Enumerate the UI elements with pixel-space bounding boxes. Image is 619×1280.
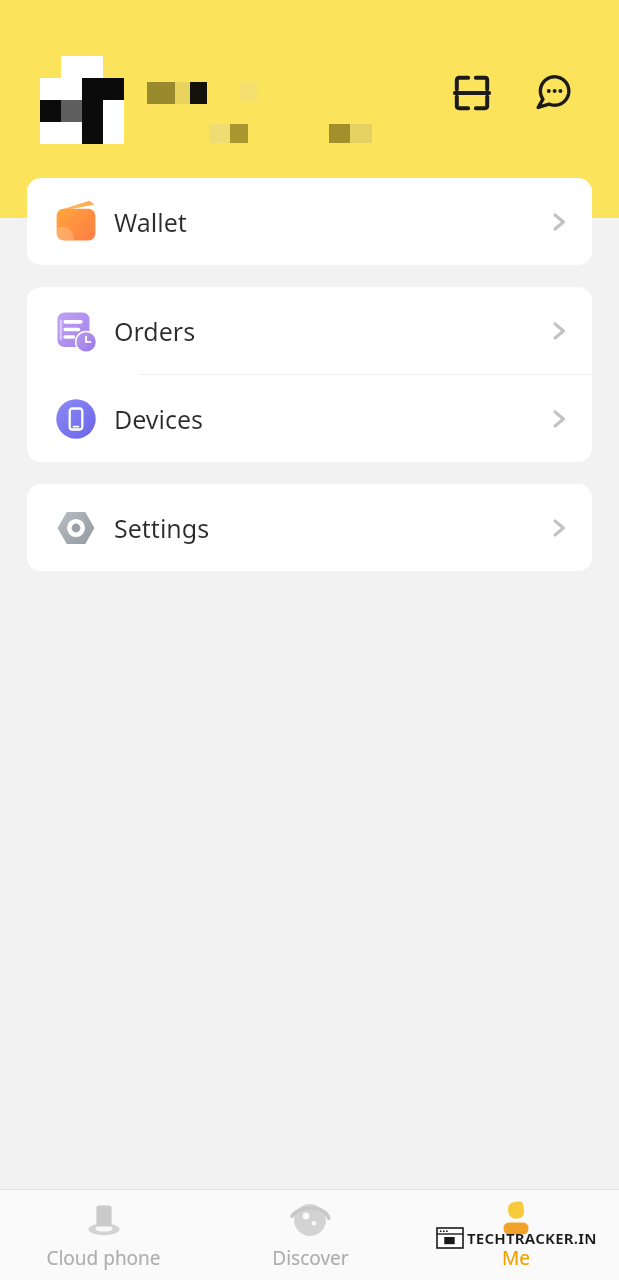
button[interactable]: Messages: [529, 69, 577, 117]
staticText: Wallet: [114, 205, 187, 239]
staticText: Devices: [114, 402, 204, 436]
staticText: Orders: [114, 314, 196, 348]
button[interactable]: Orders: [27, 287, 592, 374]
button[interactable]: Settings: [27, 484, 592, 571]
staticText: Me: [502, 1245, 530, 1271]
button[interactable]: Scan: [448, 69, 496, 117]
staticText: Cloud phone: [46, 1245, 161, 1271]
staticText: Discover: [272, 1245, 349, 1271]
button[interactable]: Discover: [207, 1190, 413, 1280]
staticText: TECHTRACKER.IN: [467, 1228, 597, 1248]
staticText: Settings: [114, 511, 210, 545]
button[interactable]: Wallet: [27, 178, 592, 265]
button[interactable]: Devices: [27, 375, 592, 462]
button[interactable]: Cloud phone: [0, 1190, 207, 1280]
button[interactable]: Me: [413, 1190, 619, 1280]
